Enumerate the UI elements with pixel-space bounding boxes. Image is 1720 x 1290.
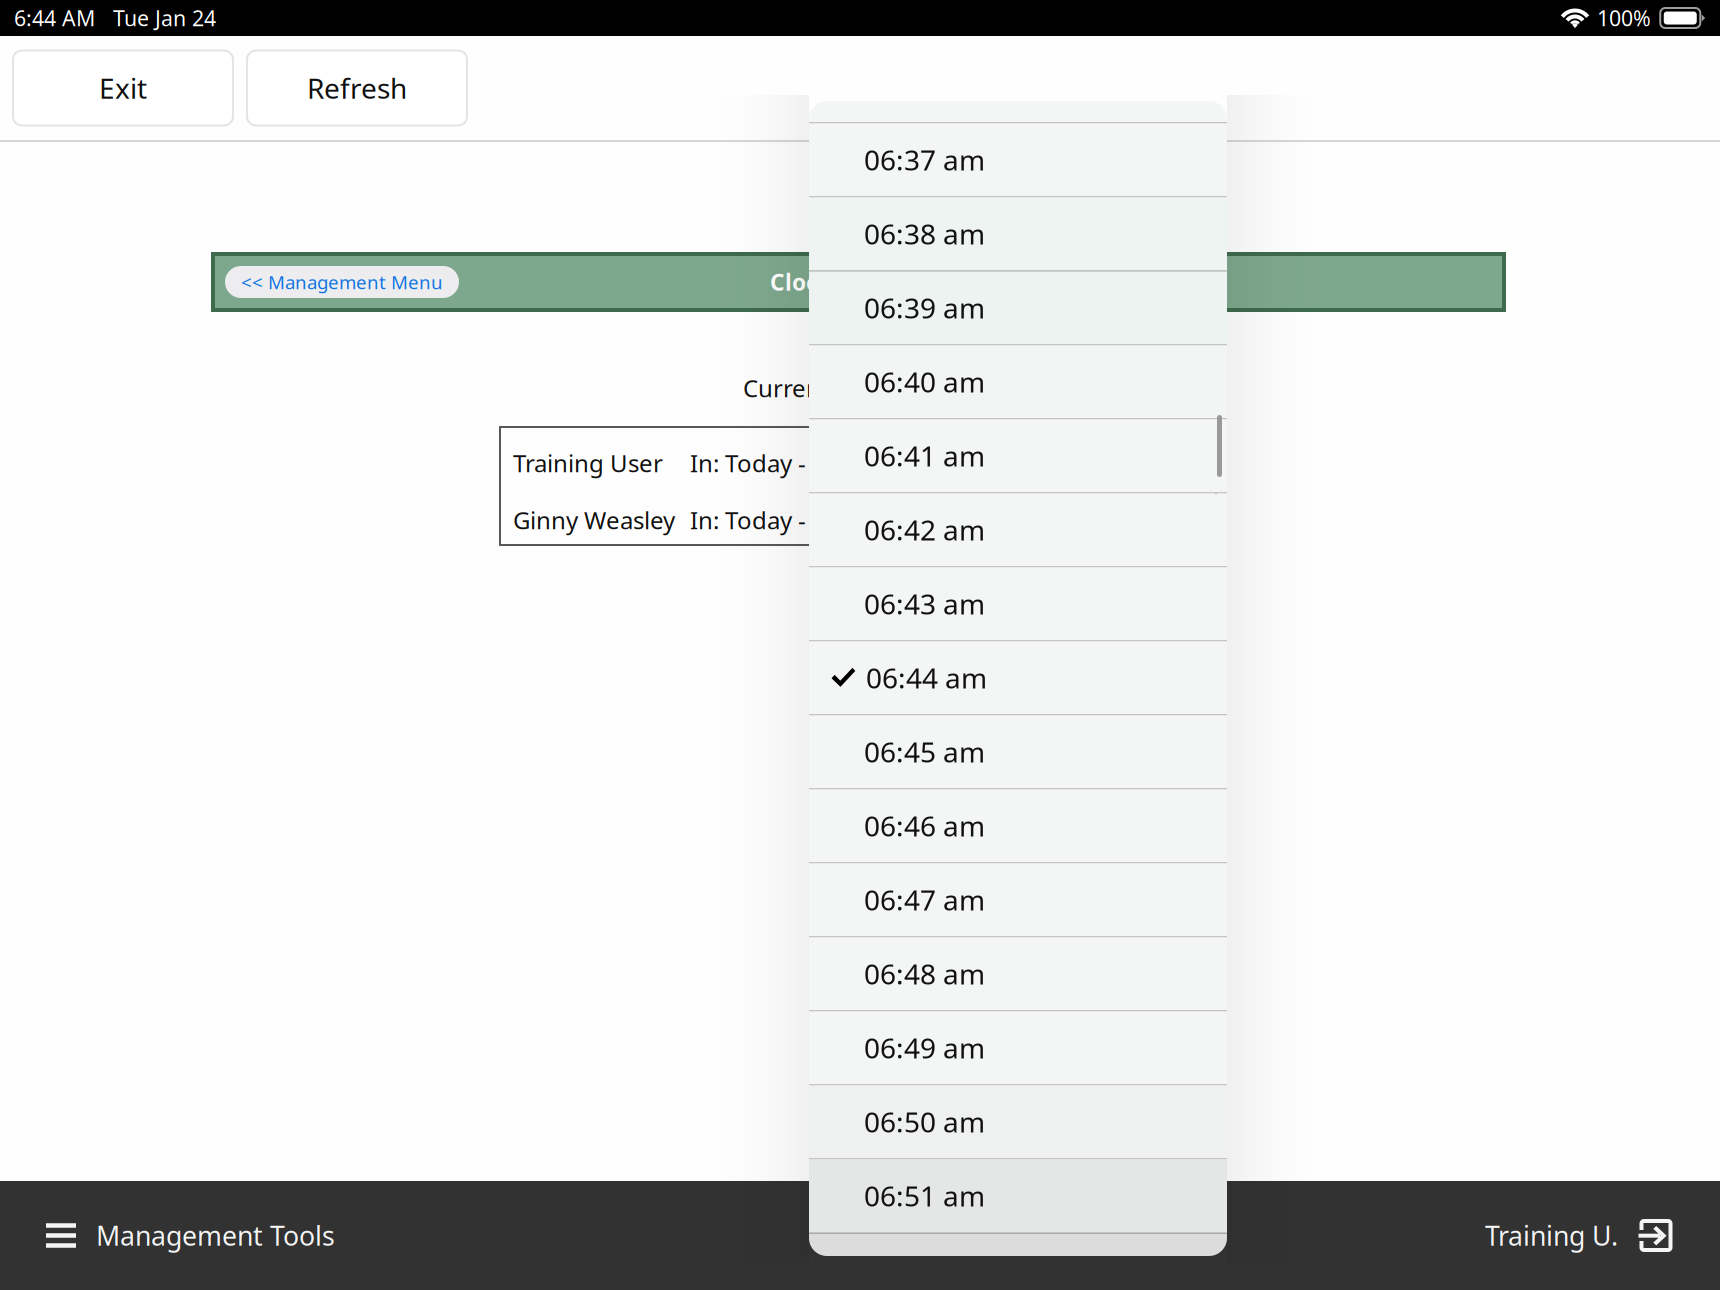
button[interactable]: Exit (13, 50, 233, 125)
staticText: Management Tools (96, 1218, 335, 1253)
button[interactable]: 06:46 am (809, 788, 1227, 862)
staticText: 06:37 am (864, 141, 985, 178)
button[interactable]: << Management Menu (225, 266, 459, 298)
staticText: 06:39 am (864, 289, 985, 326)
staticText: Current Employees Clocked In (743, 372, 1082, 404)
staticText: In: Today - 06:29 am (690, 447, 915, 479)
button[interactable]: 06:40 am (809, 344, 1227, 418)
staticText: 06:40 am (864, 363, 985, 400)
button[interactable]: Management Tools (0, 1181, 359, 1290)
staticText: Tue Jan 24 (113, 4, 216, 32)
button[interactable]: 06:51 am (809, 1158, 1227, 1232)
button[interactable]: 06:38 am (809, 196, 1227, 270)
staticText: 06:44 am (866, 659, 987, 696)
staticText: Training User (513, 447, 663, 479)
staticText: 06:41 am (864, 437, 985, 474)
staticText: 06:51 am (864, 1177, 985, 1214)
button[interactable]: 06:47 am (809, 862, 1227, 936)
staticText: Clock In/Out (770, 267, 914, 297)
button[interactable]: Refresh (247, 50, 467, 125)
staticText: Training U. (1485, 1218, 1618, 1253)
button[interactable]: 06:43 am (809, 566, 1227, 640)
button[interactable]: 06:37 am (809, 122, 1227, 196)
button[interactable]: 06:48 am (809, 936, 1227, 1010)
staticText: 06:48 am (864, 955, 985, 992)
staticText: 100% (1597, 4, 1651, 32)
button[interactable]: 06:39 am (809, 270, 1227, 344)
button[interactable]: 06:44 am (809, 640, 1227, 714)
button[interactable]: 06:50 am (809, 1084, 1227, 1158)
staticText: In: Today - 06:33 am (690, 504, 915, 536)
staticText: 06:42 am (864, 511, 985, 548)
staticText: 06:47 am (864, 881, 985, 918)
staticText: << Management Menu (241, 270, 443, 294)
button[interactable]: 06:41 am (809, 418, 1227, 492)
staticText: Ginny Weasley (513, 504, 675, 536)
button[interactable]: 06:49 am (809, 1010, 1227, 1084)
staticText: 06:38 am (864, 215, 985, 252)
button[interactable]: Training U. (1461, 1181, 1720, 1290)
button[interactable]: 06:45 am (809, 714, 1227, 788)
staticText: 6:44 AM (14, 4, 95, 32)
staticText: 06:43 am (864, 585, 985, 622)
staticText: 06:45 am (864, 733, 985, 770)
staticText: 06:50 am (864, 1103, 985, 1140)
button[interactable]: 06:42 am (809, 492, 1227, 566)
staticText: Exit (99, 69, 147, 107)
staticText: 06:49 am (864, 1029, 985, 1066)
staticText: 06:46 am (864, 807, 985, 844)
staticText: Refresh (307, 69, 407, 107)
